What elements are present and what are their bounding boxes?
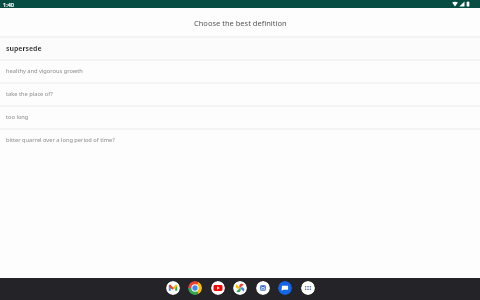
- button[interactable]: Google Play Games: [256, 281, 270, 295]
- staticText: supersede: [6, 44, 42, 53]
- button[interactable]: Gmail: [166, 281, 180, 295]
- button[interactable]: healthy and vigorous growth: [0, 61, 480, 82]
- button[interactable]: too long: [0, 107, 480, 128]
- staticText: bitter quarrel over a long period of tim…: [6, 136, 115, 144]
- button[interactable]: bitter quarrel over a long period of tim…: [0, 130, 480, 151]
- button[interactable]: Chrome: [188, 281, 202, 295]
- button[interactable]: Google Photos: [233, 281, 247, 295]
- button[interactable]: All apps: [301, 281, 315, 295]
- staticText: 1:40: [3, 1, 14, 8]
- button[interactable]: take the place of?: [0, 84, 480, 105]
- staticText: Choose the best definition: [194, 18, 287, 28]
- button[interactable]: supersede: [0, 38, 480, 59]
- staticText: healthy and vigorous growth: [6, 67, 83, 75]
- staticText: take the place of?: [6, 90, 53, 98]
- button[interactable]: Messages: [278, 281, 292, 295]
- staticText: too long: [6, 113, 29, 121]
- button[interactable]: YouTube: [211, 281, 225, 295]
